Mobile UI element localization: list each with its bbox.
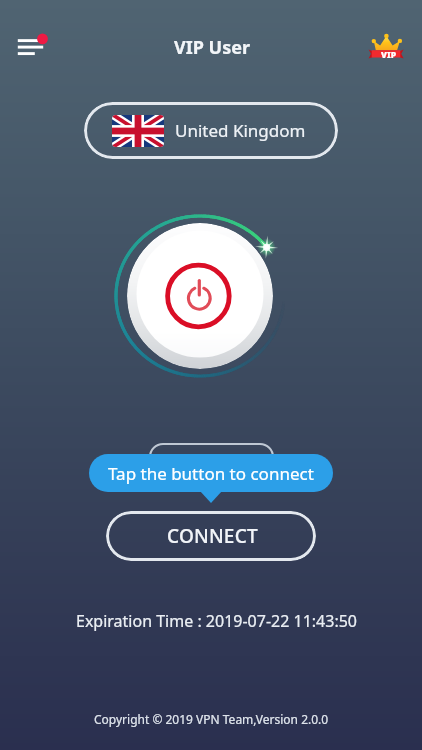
button[interactable]: VIP — [368, 28, 408, 64]
staticText: Copyright © 2019 VPN Team,Version 2.0.0 — [94, 711, 329, 727]
button[interactable]: Power, tap to connect — [127, 223, 273, 369]
button[interactable]: Menu — [8, 22, 54, 68]
staticText: CONNECT — [167, 523, 258, 549]
staticText: Tap the button to connect — [108, 462, 314, 485]
button[interactable]: United Kingdom — [84, 102, 338, 159]
staticText: VIP User — [174, 35, 250, 60]
staticText: United Kingdom — [175, 119, 306, 142]
button[interactable]: CONNECT — [106, 511, 316, 561]
staticText: Expiration Time : 2019-07-22 11:43:50 — [76, 610, 358, 632]
staticText: VIP — [381, 49, 397, 61]
